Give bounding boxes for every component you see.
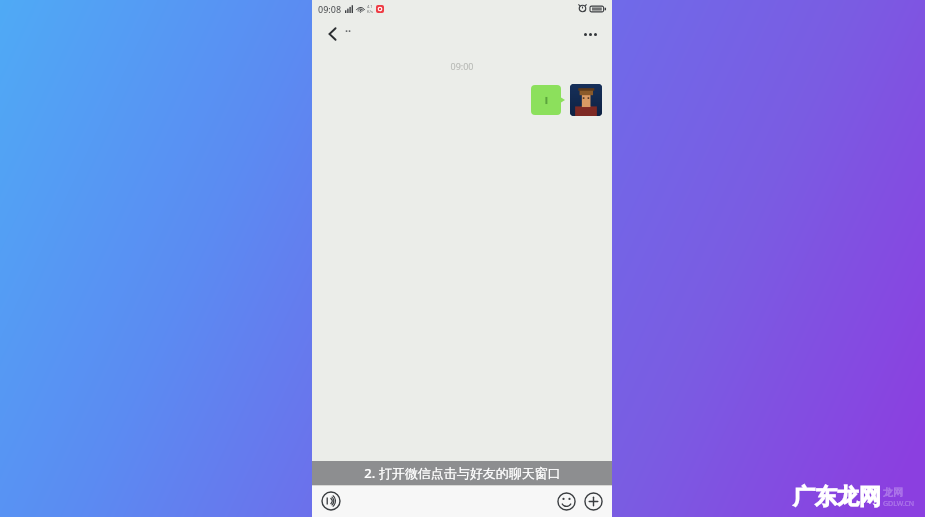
button[interactable]: Voice message [318,488,344,514]
button[interactable]: More options [576,20,604,48]
button[interactable]: Contact avatar [570,84,602,116]
staticText: 龙网 [883,486,903,499]
button[interactable]: More functions [580,488,606,514]
button[interactable]: Back [320,21,346,47]
staticText: 09:08 [318,3,342,15]
staticText: 广东龙网 [793,483,881,511]
staticText: 2. 打开微信点击与好友的聊天窗口 [364,464,561,482]
staticText: 4.1 [367,4,373,9]
button[interactable]: Emoji [553,488,579,514]
staticText: ·· [345,23,352,38]
staticText: K/s [367,9,373,14]
staticText: 09:00 [312,60,612,72]
button[interactable] [531,84,565,116]
staticText: GDLW.CN [883,499,915,509]
